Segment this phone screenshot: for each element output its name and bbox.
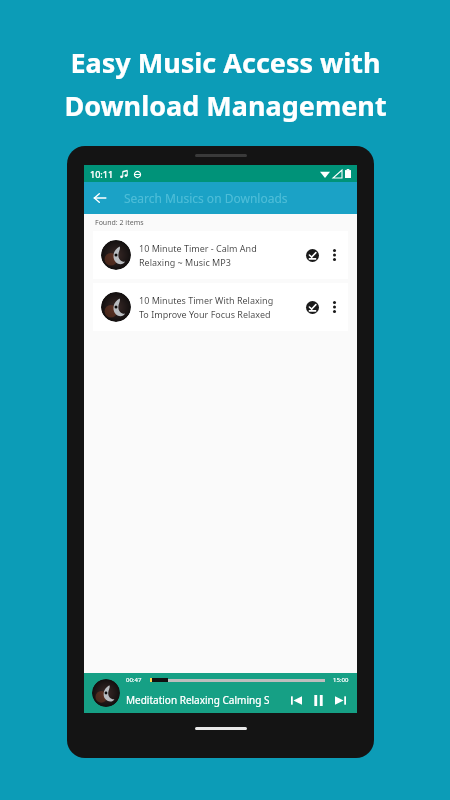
staticText: 10:11 xyxy=(90,168,114,180)
staticText: 10 Minutes Timer With Relaxing xyxy=(139,294,274,306)
button[interactable]: Pause xyxy=(307,689,329,711)
staticText: 10 Minute Timer - Calm And xyxy=(139,242,257,254)
button[interactable]: 10 Minute Timer - Calm And xyxy=(93,231,348,279)
button[interactable]: Back xyxy=(84,182,116,214)
button[interactable]: More options xyxy=(324,297,344,317)
staticText: Relaxing ~ Music MP3 xyxy=(139,256,231,268)
staticText: Easy Music Access with xyxy=(70,44,381,81)
button[interactable]: More options xyxy=(324,245,344,265)
staticText: 00:47 xyxy=(126,676,142,684)
staticText: 15:00 xyxy=(333,676,349,684)
staticText: To Improve Your Focus Relaxed xyxy=(139,308,271,320)
staticText: Search Musics on Downloads xyxy=(124,190,288,206)
staticText: Download Management xyxy=(64,87,387,124)
staticText: Meditation Relaxing Calming S xyxy=(126,693,285,707)
button[interactable]: Next xyxy=(329,689,351,711)
button[interactable]: 00:47 xyxy=(84,673,357,713)
button[interactable]: Downloaded xyxy=(300,295,324,319)
staticText: Found: 2 items xyxy=(95,218,144,228)
button[interactable]: Previous xyxy=(285,689,307,711)
button[interactable]: 10 Minutes Timer With Relaxing xyxy=(93,283,348,331)
button[interactable]: Downloaded xyxy=(300,243,324,267)
